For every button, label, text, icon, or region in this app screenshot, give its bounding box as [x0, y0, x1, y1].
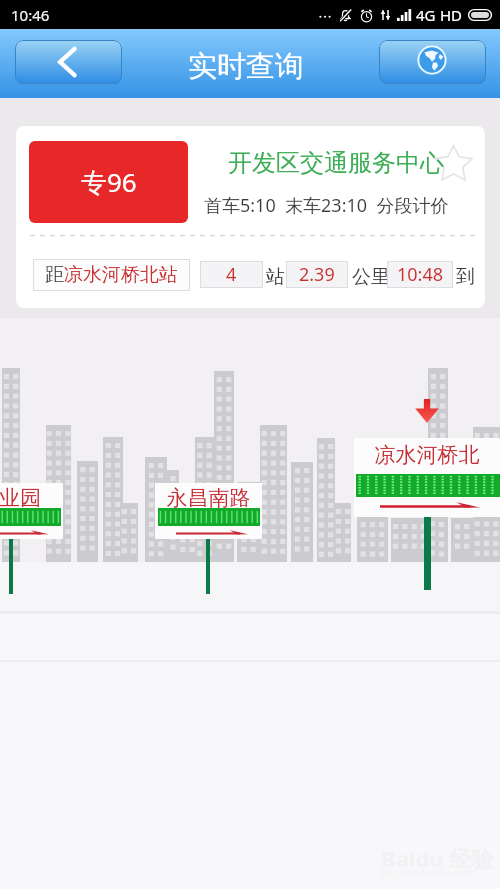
button[interactable]: 永昌南路	[155, 483, 262, 594]
staticText: 10:48	[397, 262, 444, 287]
button[interactable]: 4	[200, 261, 263, 288]
staticText: 工业园	[0, 485, 63, 511]
staticText: 距	[45, 263, 64, 287]
button[interactable]: Map	[379, 40, 486, 84]
staticText: 实时查询	[188, 48, 304, 85]
button[interactable]: Favorite	[434, 144, 473, 182]
staticText: 永昌南路	[155, 485, 262, 511]
button[interactable]: 10:48	[387, 261, 453, 288]
button[interactable]: 凉水河桥北	[354, 438, 500, 590]
staticText: 到	[456, 265, 475, 289]
staticText: 站	[266, 265, 285, 289]
staticText: 4G	[416, 5, 436, 25]
button[interactable]: Back	[15, 40, 122, 84]
staticText: 凉水河桥北站	[64, 263, 178, 287]
button[interactable]: 工业园	[0, 483, 63, 594]
staticText: 开发区交通服务中心	[228, 148, 444, 178]
button[interactable]: 2.39	[286, 261, 348, 288]
staticText: 公里	[352, 265, 390, 289]
staticText: 首车5:10 末车23:10 分段计价	[204, 193, 449, 218]
staticText: 凉水河桥北	[354, 442, 500, 468]
button[interactable]: 距	[33, 259, 190, 291]
button[interactable]: 专96	[29, 141, 188, 223]
staticText: 2.39	[299, 262, 335, 287]
staticText: 专96	[81, 164, 137, 200]
staticText: 4	[226, 262, 237, 287]
staticText: HD	[440, 5, 463, 25]
staticText: 10:46	[11, 5, 50, 25]
